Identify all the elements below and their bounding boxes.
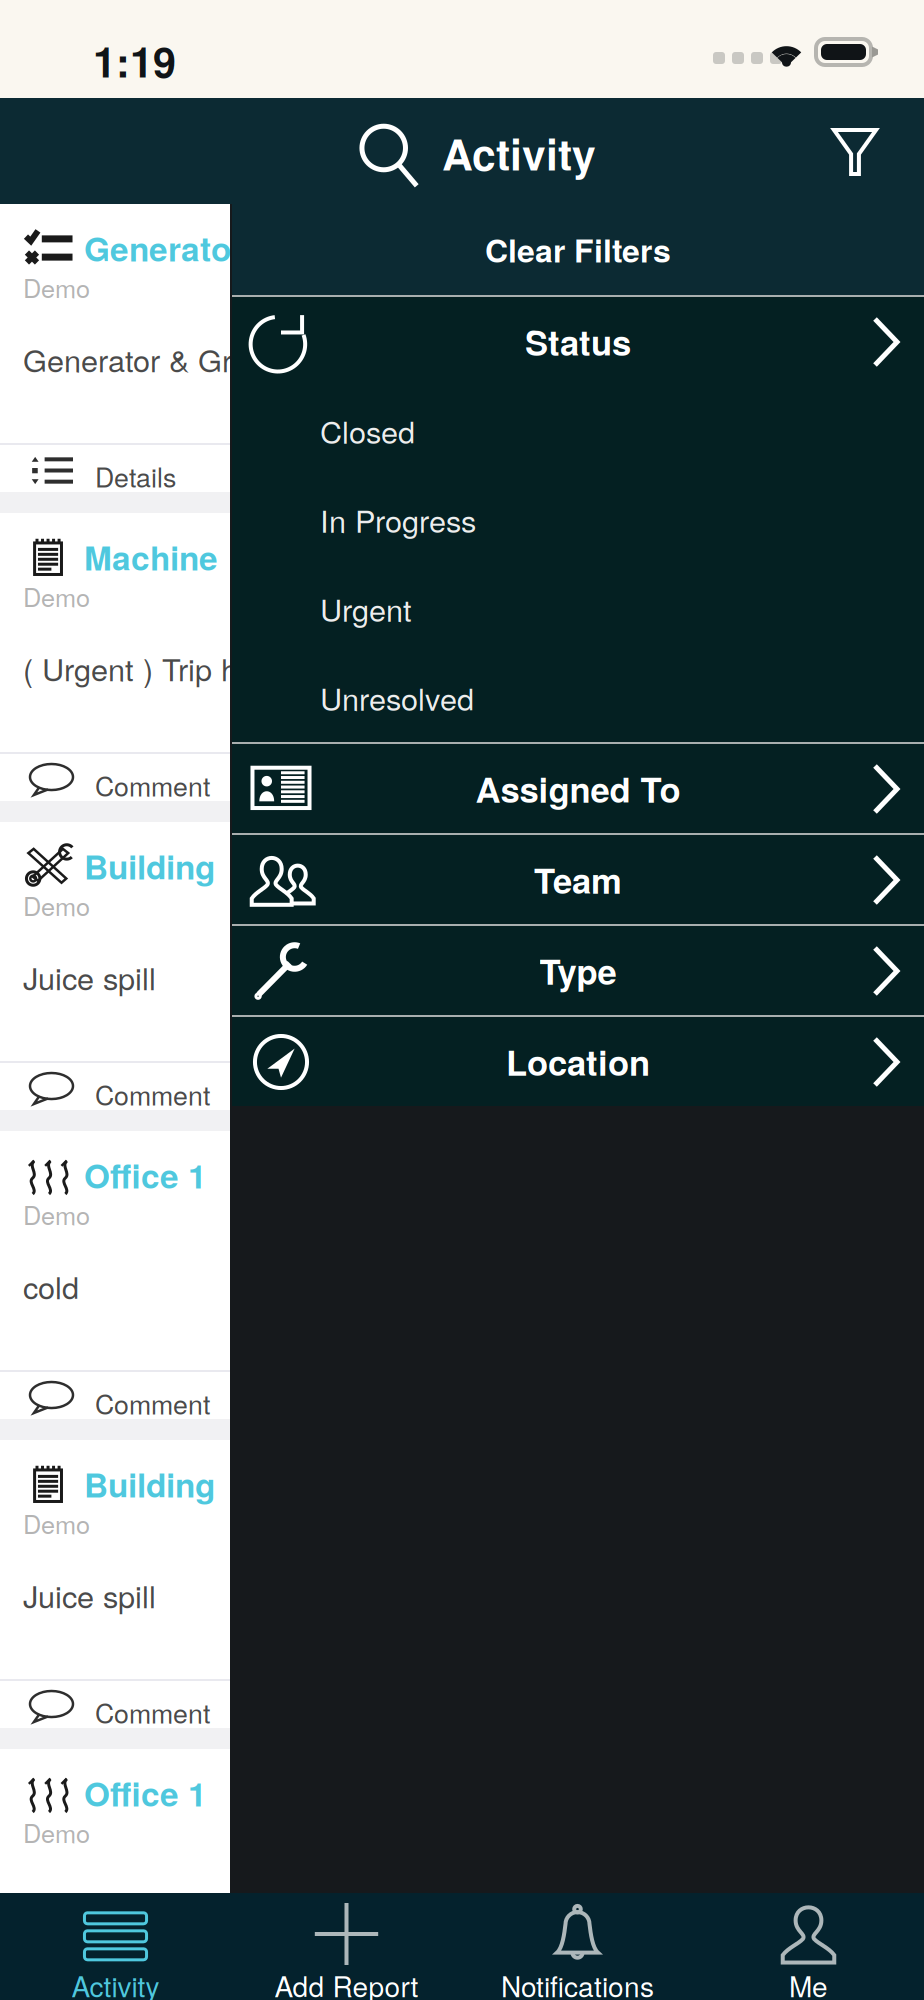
- staticText: Closed: [320, 408, 415, 452]
- staticText: Comment: [95, 1693, 210, 1731]
- staticText: In Progress: [320, 497, 476, 541]
- button[interactable]: Building: [0, 1440, 230, 1728]
- staticText: Details: [95, 457, 176, 495]
- staticText: Demo: [23, 887, 90, 923]
- staticText: Building: [84, 1460, 215, 1508]
- staticText: Office 1: [84, 1151, 207, 1199]
- button[interactable]: Activity: [350, 114, 602, 196]
- staticText: Notifications: [501, 1965, 654, 2000]
- button[interactable]: Clear Filters: [232, 204, 924, 295]
- staticText: Unresolved: [320, 675, 474, 719]
- staticText: Type: [539, 946, 616, 995]
- staticText: Me: [789, 1965, 828, 2000]
- staticText: 1:19: [93, 31, 176, 90]
- staticText: Office 1: [84, 1769, 207, 1817]
- staticText: Clear Filters: [485, 227, 671, 272]
- staticText: Activity: [71, 1965, 159, 2000]
- staticText: cold: [23, 1264, 79, 1308]
- button[interactable]: In Progress: [232, 475, 924, 564]
- staticText: Demo: [23, 1196, 90, 1232]
- button[interactable]: Assigned To: [232, 744, 924, 833]
- staticText: Team: [534, 855, 622, 904]
- button[interactable]: Closed: [232, 386, 924, 475]
- button[interactable]: Status: [232, 297, 924, 386]
- button[interactable]: Building: [0, 822, 230, 1110]
- staticText: cold: [23, 1882, 79, 1926]
- staticText: Demo: [23, 1814, 90, 1850]
- staticText: Comment: [95, 766, 210, 804]
- staticText: Location: [506, 1037, 650, 1086]
- button[interactable]: Type: [232, 926, 924, 1015]
- button[interactable]: Office 1: [0, 1131, 230, 1419]
- button[interactable]: Machine: [0, 513, 230, 801]
- staticText: Juice spill: [23, 955, 156, 999]
- staticText: Assigned To: [475, 764, 680, 813]
- staticText: Urgent: [320, 586, 412, 630]
- staticText: Activity: [442, 122, 596, 184]
- staticText: Demo: [23, 1505, 90, 1541]
- button[interactable]: Notifications: [462, 1893, 693, 2000]
- staticText: ( Urgent ) Trip ha: [23, 646, 255, 690]
- button[interactable]: Team: [232, 835, 924, 924]
- staticText: Machine: [84, 533, 218, 581]
- staticText: Add Report: [274, 1965, 418, 2000]
- button[interactable]: Me: [693, 1893, 924, 2000]
- button[interactable]: Generator: [0, 204, 230, 492]
- button[interactable]: Urgent: [232, 564, 924, 653]
- staticText: Building: [84, 842, 215, 890]
- button[interactable]: Unresolved: [232, 653, 924, 742]
- staticText: Comment: [95, 1384, 210, 1422]
- button[interactable]: Activity: [0, 1893, 231, 2000]
- button[interactable]: Filter: [822, 117, 888, 187]
- staticText: Generator & Gro: [23, 337, 249, 381]
- button[interactable]: Office 1: [0, 1749, 230, 2000]
- button[interactable]: Location: [232, 1017, 924, 1106]
- staticText: Generator: [84, 224, 244, 272]
- staticText: Demo: [23, 578, 90, 614]
- staticText: Demo: [23, 269, 90, 305]
- button[interactable]: Add Report: [231, 1893, 462, 2000]
- staticText: Comment: [95, 1075, 210, 1113]
- staticText: Status: [525, 317, 631, 366]
- staticText: Juice spill: [23, 1573, 156, 1617]
